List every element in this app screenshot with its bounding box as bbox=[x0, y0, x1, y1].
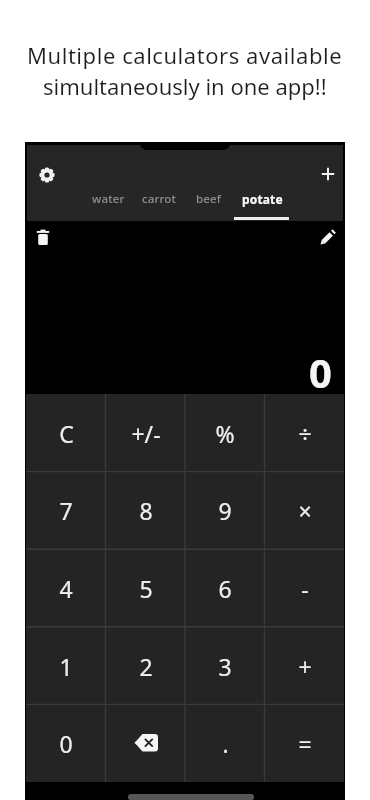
button[interactable]: 5 bbox=[106, 549, 186, 627]
button[interactable]: 9 bbox=[185, 471, 265, 549]
button[interactable]: % bbox=[185, 394, 265, 472]
button[interactable]: 1 bbox=[26, 627, 106, 705]
button[interactable]: 7 bbox=[26, 471, 106, 549]
staticText: 9 bbox=[218, 495, 232, 526]
button[interactable] bbox=[320, 229, 336, 245]
staticText: 0 bbox=[309, 345, 332, 399]
staticText: Multiple calculators available bbox=[27, 40, 343, 70]
button[interactable]: 4 bbox=[26, 549, 106, 627]
staticText: 8 bbox=[139, 495, 153, 526]
button[interactable]: = bbox=[265, 704, 345, 782]
staticText: 4 bbox=[59, 573, 73, 604]
staticText: % bbox=[215, 418, 235, 449]
staticText: potate bbox=[242, 191, 283, 207]
button[interactable]: potate bbox=[227, 189, 297, 209]
button[interactable]: water bbox=[73, 189, 143, 209]
button[interactable] bbox=[320, 166, 336, 182]
staticText: 5 bbox=[139, 573, 153, 604]
staticText: simultaneously in one app!! bbox=[43, 71, 327, 101]
staticText: +/- bbox=[131, 418, 161, 449]
staticText: 2 bbox=[139, 651, 153, 682]
staticText: 0 bbox=[59, 728, 73, 759]
staticText: - bbox=[301, 573, 309, 604]
button[interactable]: C bbox=[26, 394, 106, 472]
button[interactable] bbox=[39, 167, 55, 183]
button[interactable]: +/- bbox=[106, 394, 186, 472]
button[interactable]: ÷ bbox=[265, 394, 345, 472]
staticText: 6 bbox=[218, 573, 232, 604]
staticText: ÷ bbox=[298, 418, 312, 449]
staticText: beef bbox=[196, 191, 222, 207]
staticText: + bbox=[298, 651, 312, 682]
button[interactable]: carrot bbox=[124, 189, 194, 209]
staticText: water bbox=[92, 191, 125, 207]
button[interactable]: . bbox=[185, 704, 265, 782]
button[interactable]: 8 bbox=[106, 471, 186, 549]
staticText: × bbox=[298, 495, 312, 526]
staticText: carrot bbox=[142, 191, 177, 207]
staticText: = bbox=[298, 728, 312, 759]
staticText: . bbox=[222, 728, 229, 759]
button[interactable] bbox=[36, 229, 50, 245]
staticText: 7 bbox=[59, 495, 73, 526]
button[interactable]: 2 bbox=[106, 627, 186, 705]
button[interactable]: + bbox=[265, 627, 345, 705]
button[interactable]: beef bbox=[174, 189, 244, 209]
staticText: 3 bbox=[218, 651, 232, 682]
button[interactable] bbox=[106, 704, 186, 782]
button[interactable]: 3 bbox=[185, 627, 265, 705]
button[interactable]: 6 bbox=[185, 549, 265, 627]
button[interactable]: - bbox=[265, 549, 345, 627]
button[interactable]: 0 bbox=[26, 704, 106, 782]
staticText: C bbox=[59, 418, 74, 449]
staticText: 1 bbox=[59, 651, 73, 682]
button[interactable]: × bbox=[265, 471, 345, 549]
